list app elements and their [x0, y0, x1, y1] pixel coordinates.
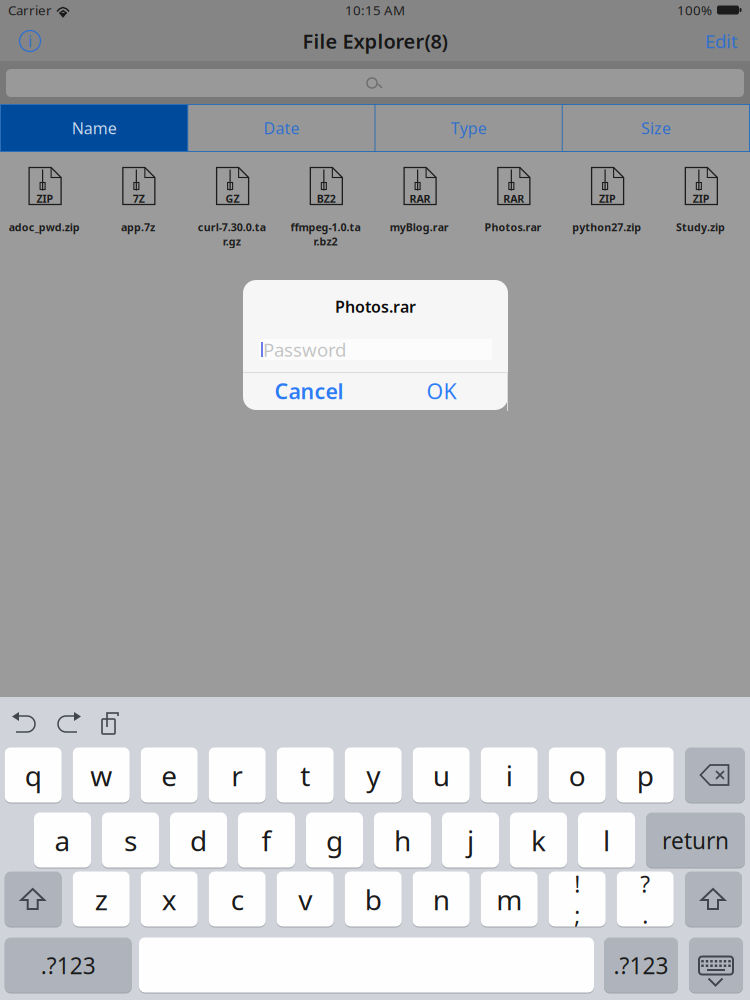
button[interactable]: Size	[563, 105, 749, 151]
staticText: GZ	[226, 191, 240, 206]
staticText: 7Z	[133, 191, 145, 206]
button[interactable]: Cancel	[243, 372, 375, 410]
button[interactable]: ZIP	[656, 152, 750, 242]
button[interactable]: k	[510, 813, 567, 868]
button[interactable]: Shift	[685, 872, 742, 927]
staticText: app.7z	[121, 220, 155, 234]
button[interactable]: m	[481, 872, 538, 927]
button[interactable]: n	[413, 872, 470, 927]
button[interactable]: p	[617, 748, 674, 803]
button[interactable]: u	[413, 748, 470, 803]
button[interactable]: c	[209, 872, 266, 927]
staticText: RAR	[503, 191, 524, 206]
button[interactable]: BZ2	[281, 152, 375, 242]
button[interactable]: t	[277, 748, 334, 803]
staticText: File Explorer(8)	[302, 28, 447, 54]
button[interactable]: Name	[1, 105, 187, 151]
staticText: myBlog.rar	[389, 220, 448, 234]
staticText: Photos.rar	[335, 296, 416, 317]
staticText: e	[161, 757, 177, 794]
staticText: .?123	[41, 950, 96, 980]
staticText: u	[433, 757, 450, 794]
staticText: ZIP	[37, 191, 54, 206]
staticText: r	[231, 757, 243, 794]
button[interactable]: Search	[0, 62, 750, 104]
staticText: g	[326, 822, 343, 859]
button[interactable]: y	[345, 748, 402, 803]
button[interactable]: h	[374, 813, 431, 868]
button[interactable]: 7Z	[94, 152, 188, 242]
staticText: ?	[640, 869, 650, 899]
staticText: h	[394, 822, 411, 859]
button[interactable]: Edit	[678, 20, 738, 62]
button[interactable]: v	[277, 872, 334, 927]
button[interactable]: j	[442, 813, 499, 868]
button[interactable]: g	[306, 813, 363, 868]
button[interactable]: GZ	[187, 152, 281, 242]
staticText: d	[190, 822, 207, 859]
button[interactable]	[139, 938, 594, 993]
staticText: i	[506, 757, 513, 794]
button[interactable]: ZIP	[0, 152, 94, 242]
button[interactable]: r	[209, 748, 266, 803]
button[interactable]: Hide keyboard	[689, 938, 743, 993]
staticText: t	[300, 757, 310, 794]
staticText: 100%	[677, 1, 712, 19]
button[interactable]: OK	[375, 372, 508, 410]
button[interactable]: s	[102, 813, 159, 868]
staticText: ;	[574, 900, 580, 930]
button[interactable]: Delete	[685, 748, 745, 803]
staticText: curl-7.30.0.ta r.gz	[197, 220, 265, 248]
button[interactable]: Type	[375, 105, 562, 151]
button[interactable]: z	[73, 872, 130, 927]
staticText: .?123	[613, 950, 668, 980]
staticText: python27.zip	[572, 220, 641, 234]
button[interactable]: e	[141, 748, 198, 803]
button[interactable]: x	[141, 872, 198, 927]
button[interactable]: q	[5, 748, 62, 803]
staticText: k	[531, 822, 546, 859]
staticText: Name	[72, 117, 117, 139]
staticText: OK	[426, 377, 456, 405]
staticText: i	[28, 30, 32, 52]
button[interactable]: b	[345, 872, 402, 927]
button[interactable]: RAR	[469, 152, 563, 242]
staticText: f	[261, 822, 271, 859]
staticText: !	[574, 869, 580, 899]
staticText: y	[366, 757, 380, 794]
button[interactable]: Info	[9, 20, 51, 62]
button[interactable]: i	[481, 748, 538, 803]
button[interactable]: o	[549, 748, 606, 803]
staticText: 10:15 AM	[345, 1, 405, 19]
button[interactable]: Redo	[57, 714, 81, 735]
button[interactable]: Paste	[102, 713, 120, 734]
button[interactable]: .?123	[5, 938, 132, 993]
staticText: b	[365, 881, 382, 918]
button[interactable]: return	[646, 813, 745, 868]
button[interactable]: d	[170, 813, 227, 868]
button[interactable]: f	[238, 813, 295, 868]
button[interactable]: RAR	[375, 152, 469, 242]
staticText: a	[54, 822, 70, 859]
staticText: q	[25, 757, 42, 794]
button[interactable]: l	[578, 813, 635, 868]
button[interactable]: Undo	[12, 714, 36, 735]
staticText: ZIP	[599, 191, 616, 206]
button[interactable]: a	[34, 813, 91, 868]
staticText: ZIP	[693, 191, 710, 206]
button[interactable]: w	[73, 748, 130, 803]
staticText: ffmpeg-1.0.ta r.bz2	[290, 220, 360, 248]
button[interactable]: Shift	[5, 872, 62, 927]
button[interactable]: .?123	[604, 938, 678, 993]
staticText: Photos.rar	[484, 220, 541, 234]
button[interactable]: !	[549, 872, 606, 927]
button[interactable]: ZIP	[562, 152, 656, 242]
staticText: x	[162, 881, 177, 918]
staticText: w	[90, 757, 112, 794]
button[interactable]: ?	[617, 872, 674, 927]
staticText: p	[637, 757, 654, 794]
staticText: l	[603, 822, 610, 859]
button[interactable]: Date	[188, 105, 374, 151]
staticText: v	[298, 881, 312, 918]
staticText: Edit	[705, 29, 738, 53]
